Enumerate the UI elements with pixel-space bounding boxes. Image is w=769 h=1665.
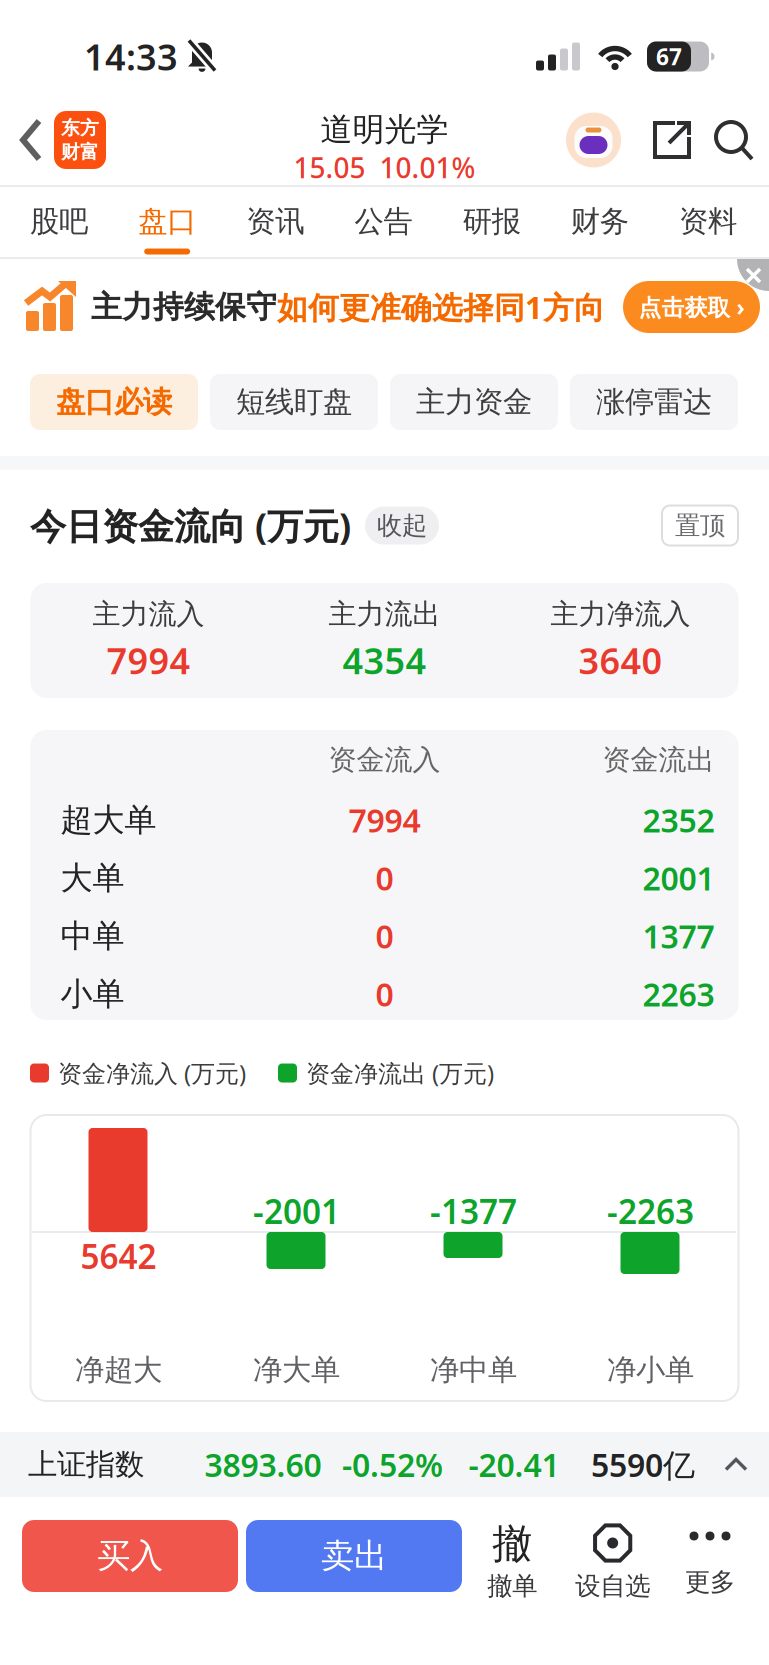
button[interactable]: 更多 [675, 1520, 745, 1598]
staticText: 资金流入 [328, 743, 440, 777]
button[interactable]: 短线盯盘 [210, 374, 378, 430]
button[interactable] [709, 116, 757, 164]
button[interactable]: 涨停雷达 [570, 374, 738, 430]
staticText: 资金净流出 (万元) [306, 1057, 494, 1089]
staticText: 67 [656, 41, 682, 71]
staticText: 资金流出 [602, 743, 714, 777]
staticText: 14:33 [84, 33, 178, 80]
staticText: 上证指数 [28, 1446, 144, 1482]
staticText: 主力净流入 [550, 597, 690, 631]
button[interactable]: 上证指数 [0, 1432, 769, 1497]
button[interactable]: 主力资金 [390, 374, 558, 430]
staticText: 资料 [679, 203, 737, 239]
staticText: 设自选 [575, 1570, 650, 1601]
button[interactable]: 财务 [561, 203, 639, 254]
staticText: 财富 [61, 140, 99, 163]
staticText: 资讯 [246, 203, 304, 239]
staticText: 财务 [571, 203, 629, 239]
staticText: 超大单 [60, 800, 156, 840]
staticText: 小单 [60, 974, 124, 1014]
staticText: 0 [375, 973, 393, 1015]
staticText: 2352 [642, 799, 714, 841]
staticText: -20.41 [468, 1443, 559, 1486]
staticText: 7994 [348, 799, 420, 841]
staticText: 2263 [642, 973, 714, 1015]
staticText: 主力持续保守 [91, 288, 277, 326]
staticText: 主力资金 [416, 384, 532, 420]
staticText: 东方 [61, 116, 99, 139]
button[interactable]: 资料 [669, 203, 747, 254]
staticText: 大单 [60, 858, 124, 898]
button[interactable]: 盘口 [128, 203, 206, 254]
staticText: 点击获取 › [638, 292, 744, 322]
staticText: 涨停雷达 [596, 384, 712, 420]
staticText: 3640 [578, 636, 662, 684]
button[interactable]: 撤 [474, 1520, 550, 1602]
button[interactable]: 点击获取 › [623, 281, 760, 333]
staticText: 主力流出 [328, 597, 440, 631]
button[interactable]: 买入 [22, 1520, 238, 1592]
staticText: 收起 [377, 510, 427, 541]
staticText: 3893.60 [204, 1443, 321, 1486]
staticText: 置顶 [675, 510, 725, 541]
button[interactable]: 卖出 [246, 1520, 462, 1592]
staticText: 净超大 [75, 1352, 162, 1388]
staticText: 中单 [60, 916, 124, 956]
button[interactable]: 股吧 [20, 203, 98, 254]
staticText: 道明光学 [320, 110, 448, 149]
staticText: 净中单 [430, 1352, 517, 1388]
staticText: 卖出 [321, 1535, 387, 1576]
staticText: -2263 [607, 1189, 694, 1233]
button[interactable]: 收起 [365, 506, 439, 544]
staticText: 7994 [106, 636, 190, 684]
staticText: 股吧 [30, 203, 88, 239]
staticText: 4354 [342, 636, 426, 684]
staticText: 买入 [97, 1535, 163, 1576]
staticText: 短线盯盘 [236, 384, 352, 420]
staticText: 净大单 [253, 1352, 340, 1388]
staticText: 盘口必读 [56, 384, 172, 420]
button[interactable] [566, 112, 621, 167]
staticText: 撤单 [487, 1570, 537, 1601]
button[interactable]: 研报 [453, 203, 531, 254]
button[interactable]: 东方 [54, 111, 106, 169]
button[interactable] [737, 259, 769, 291]
staticText: 资金净流入 (万元) [58, 1057, 246, 1089]
staticText: 2001 [642, 857, 714, 899]
staticText: -1377 [430, 1189, 517, 1233]
staticText: 如何更准确选择同1方向 [277, 287, 605, 327]
button[interactable]: 资讯 [236, 203, 314, 254]
staticText: 撤 [492, 1519, 532, 1568]
staticText: 盘口 [138, 203, 196, 239]
button[interactable]: 公告 [344, 203, 422, 254]
staticText: 5590亿 [591, 1443, 695, 1486]
staticText: 5642 [80, 1234, 156, 1278]
button[interactable]: 主力持续保守 [91, 285, 605, 329]
button[interactable] [645, 115, 695, 165]
staticText: 主力流入 [92, 597, 204, 631]
button[interactable]: 盘口必读 [30, 374, 198, 430]
staticText: -0.52% [342, 1443, 443, 1486]
staticText: 研报 [463, 203, 521, 239]
staticText: 0 [375, 915, 393, 957]
staticText: -2001 [253, 1189, 340, 1233]
staticText: 净小单 [607, 1352, 694, 1388]
staticText: 今日资金流向 (万元) [30, 502, 351, 549]
button[interactable]: 置顶 [662, 505, 738, 545]
staticText: 1377 [642, 915, 714, 957]
staticText: 更多 [685, 1566, 735, 1597]
button[interactable] [0, 117, 54, 163]
staticText: 0 [375, 857, 393, 899]
button[interactable]: 设自选 [563, 1520, 663, 1602]
staticText: 公告 [354, 203, 412, 239]
staticText: 15.05 10.01% [293, 149, 475, 186]
